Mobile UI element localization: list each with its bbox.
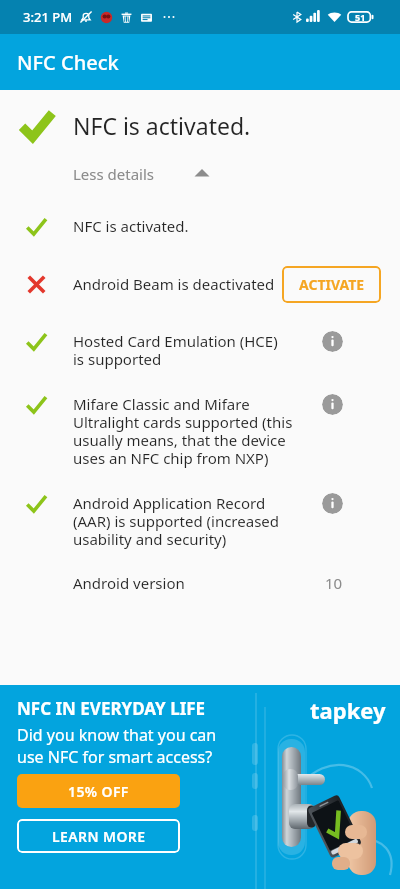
staticText: 3:21 PM bbox=[23, 8, 73, 26]
staticText: LEARN MORE bbox=[52, 827, 146, 846]
button[interactable]: Android version bbox=[0, 573, 400, 593]
staticText: NFC Check bbox=[17, 49, 119, 76]
staticText: Android version bbox=[73, 573, 325, 593]
button[interactable]: NFC is activated. bbox=[0, 216, 400, 237]
staticText: Did you know that you can use NFC for sm… bbox=[17, 724, 217, 768]
button[interactable]: Mifare Classic and Mifare Ultralight car… bbox=[0, 394, 400, 469]
button[interactable]: 15% OFF bbox=[17, 774, 180, 808]
button[interactable]: Android Application Record (AAR) is supp… bbox=[0, 493, 400, 550]
staticText: 15% OFF bbox=[68, 782, 129, 801]
button[interactable]: LEARN MORE bbox=[17, 819, 180, 853]
staticText: Mifare Classic and Mifare Ultralight car… bbox=[73, 394, 293, 469]
staticText: NFC is activated. bbox=[73, 216, 189, 236]
staticText: 51 bbox=[355, 11, 366, 23]
button[interactable]: More information bbox=[322, 331, 343, 352]
button[interactable]: More information bbox=[322, 493, 343, 514]
staticText: NFC is activated. bbox=[73, 110, 251, 141]
button[interactable]: tapkey bbox=[0, 685, 400, 889]
staticText: 10 bbox=[325, 573, 343, 593]
staticText: tapkey bbox=[310, 695, 386, 725]
button[interactable]: Hosted Card Emulation (HCE) is supported bbox=[0, 331, 400, 370]
staticText: NFC IN EVERYDAY LIFE bbox=[17, 697, 206, 720]
staticText: Hosted Card Emulation (HCE) is supported bbox=[73, 331, 285, 370]
button[interactable]: More information bbox=[322, 394, 343, 415]
button[interactable]: Android Beam is deactivated bbox=[0, 274, 400, 311]
staticText: Less details bbox=[73, 164, 155, 184]
staticText: Android Application Record (AAR) is supp… bbox=[73, 493, 288, 550]
button[interactable]: Less details bbox=[0, 160, 400, 188]
staticText: Android Beam is deactivated bbox=[73, 274, 275, 294]
staticText: ACTIVATE bbox=[299, 275, 365, 294]
button[interactable]: ACTIVATE bbox=[282, 266, 381, 303]
button[interactable]: NFC is activated. bbox=[0, 107, 400, 143]
